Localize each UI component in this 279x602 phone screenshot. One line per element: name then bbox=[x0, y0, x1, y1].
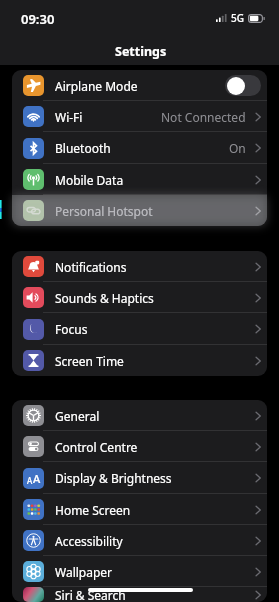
staticText: Bluetooth bbox=[55, 140, 111, 156]
staticText: Sounds & Haptics bbox=[55, 290, 154, 306]
staticText: Wallpaper bbox=[55, 564, 113, 580]
staticText: Screen Time bbox=[55, 353, 124, 369]
staticText: Settings bbox=[115, 43, 167, 60]
staticText: Control Centre bbox=[55, 439, 138, 455]
staticText: Airplane Mode bbox=[55, 78, 138, 94]
staticText: Siri & Search bbox=[55, 587, 126, 602]
button[interactable]: Accessibility bbox=[12, 525, 267, 556]
staticText: Personal Hotspot bbox=[55, 203, 153, 219]
staticText: Not Connected bbox=[161, 109, 246, 125]
button[interactable]: Notifications bbox=[12, 251, 267, 282]
button[interactable]: Home Screen bbox=[12, 494, 267, 525]
staticText: General bbox=[55, 408, 100, 424]
staticText: Focus bbox=[55, 321, 88, 337]
button[interactable]: Bluetooth bbox=[12, 132, 267, 164]
staticText: 09:30 bbox=[21, 10, 55, 28]
staticText: Display & Brightness bbox=[55, 470, 172, 486]
button[interactable]: Sounds & Haptics bbox=[12, 282, 267, 313]
staticText: 5G bbox=[231, 11, 244, 25]
staticText: A bbox=[27, 475, 33, 486]
staticText: Home Screen bbox=[55, 502, 131, 518]
staticText: Wi-Fi bbox=[55, 109, 83, 125]
button[interactable]: Control Centre bbox=[12, 431, 267, 462]
button[interactable]: Wi-Fi bbox=[12, 101, 267, 132]
staticText: On bbox=[229, 140, 246, 156]
button[interactable]: Airplane Mode bbox=[12, 70, 267, 101]
button[interactable]: Airplane Mode toggle bbox=[225, 75, 261, 96]
button[interactable]: A bbox=[12, 462, 267, 494]
button[interactable]: Screen Time bbox=[12, 345, 267, 376]
button[interactable]: Wallpaper bbox=[12, 556, 267, 587]
button[interactable]: Focus bbox=[12, 313, 267, 345]
button[interactable]: Mobile Data bbox=[12, 164, 267, 195]
button[interactable]: General bbox=[12, 400, 267, 431]
button[interactable]: Personal Hotspot bbox=[12, 195, 267, 226]
staticText: Notifications bbox=[55, 259, 127, 275]
staticText: A bbox=[33, 471, 41, 486]
button[interactable]: Siri & Search bbox=[12, 587, 267, 602]
staticText: Accessibility bbox=[55, 533, 123, 549]
staticText: Mobile Data bbox=[55, 172, 124, 188]
